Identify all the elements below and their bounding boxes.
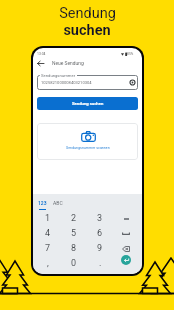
staticText: ,: [47, 258, 49, 269]
button[interactable]: Backspace: [113, 241, 139, 256]
staticText: 4: [45, 228, 51, 239]
button[interactable]: 6: [87, 226, 113, 241]
staticText: 3: [97, 213, 103, 224]
button[interactable]: 3: [87, 211, 113, 226]
button[interactable]: Space: [113, 226, 139, 241]
staticText: Sendungsnummer: [41, 73, 76, 78]
staticText: 7: [45, 243, 51, 254]
other: Space: [122, 232, 130, 235]
button[interactable]: 7: [35, 241, 61, 256]
button[interactable]: Sendungsnummer scannen: [37, 123, 138, 160]
button[interactable]: 4: [35, 226, 61, 241]
staticText: 85%: [127, 52, 134, 56]
button[interactable]: 9: [87, 241, 113, 256]
button[interactable]: ,: [35, 256, 61, 271]
staticText: 2: [71, 213, 77, 224]
button[interactable]: ABC: [53, 200, 63, 206]
button[interactable]: .: [87, 256, 113, 271]
staticText: 0: [71, 258, 77, 269]
button[interactable]: Back: [33, 56, 47, 70]
staticText: suchen: [63, 22, 111, 39]
button[interactable]: 2: [61, 211, 87, 226]
staticText: Neue Sendung: [52, 60, 84, 66]
button[interactable]: Sendung suchen: [37, 97, 138, 110]
staticText: 1025821000008403210304: [41, 80, 92, 85]
staticText: 5: [71, 228, 77, 239]
button[interactable]: Enter: [113, 256, 139, 271]
button[interactable]: Enter: [121, 255, 131, 265]
button[interactable]: Hyphen: [113, 211, 139, 226]
button[interactable]: 123: [38, 200, 47, 210]
staticText: ABC: [53, 200, 63, 206]
staticText: 13:04: [37, 52, 46, 56]
staticText: Sendungsnummer scannen: [66, 146, 110, 150]
button[interactable]: 1: [35, 211, 61, 226]
staticText: 8: [71, 243, 77, 254]
staticText: 1: [45, 213, 51, 224]
button[interactable]: 0: [61, 256, 87, 271]
staticText: Sendung suchen: [72, 101, 104, 106]
button[interactable]: 1025821000008403210304: [37, 75, 138, 90]
button[interactable]: 5: [61, 226, 87, 241]
staticText: 6: [97, 228, 103, 239]
staticText: Sendung: [59, 5, 116, 22]
staticText: .: [99, 258, 102, 269]
staticText: 9: [97, 243, 103, 254]
staticText: 123: [38, 200, 47, 206]
button[interactable]: 8: [61, 241, 87, 256]
other: Backspace: [122, 246, 130, 252]
